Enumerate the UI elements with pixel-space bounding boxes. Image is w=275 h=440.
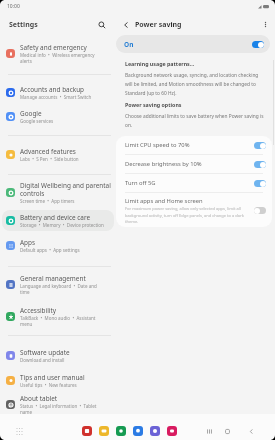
button[interactable]: Battery and device care xyxy=(2,210,114,231)
button[interactable]: Recents xyxy=(203,425,215,437)
staticText: Apps xyxy=(20,238,36,247)
button[interactable]: Software update xyxy=(2,345,114,366)
button[interactable]: Taskbar handle xyxy=(16,427,24,436)
staticText: Manage accounts • Smart Switch xyxy=(20,94,92,100)
button[interactable]: My Files xyxy=(99,426,109,436)
button[interactable]: Accessibility xyxy=(2,303,114,329)
staticText: Digital Wellbeing and parental controls xyxy=(20,181,111,198)
button[interactable]: Toggle xyxy=(254,180,266,187)
button[interactable]: Google xyxy=(2,106,114,127)
staticText: For maximum power saving, allow only sel… xyxy=(125,206,249,224)
button[interactable]: Toggle xyxy=(252,41,264,48)
button[interactable]: Decrease brightness by 10% xyxy=(116,155,272,173)
button[interactable]: Office xyxy=(82,426,92,436)
button[interactable]: On xyxy=(116,35,270,53)
button[interactable]: Toggle xyxy=(254,161,266,168)
button[interactable]: Search xyxy=(94,17,110,33)
button[interactable]: Limit CPU speed to 70% xyxy=(116,136,272,154)
button[interactable]: Toggle xyxy=(254,207,266,214)
button[interactable]: Back xyxy=(119,18,132,31)
button[interactable]: Accounts and backup xyxy=(2,82,114,103)
button[interactable]: Toggle xyxy=(254,142,266,149)
button[interactable]: Turn off 5G xyxy=(116,174,272,192)
staticText: TalkBack • Mono audio • Assistant menu xyxy=(20,315,96,327)
staticText: Useful tips • New features xyxy=(20,382,77,388)
staticText: Power saving options xyxy=(125,101,182,108)
staticText: 10:00 xyxy=(7,3,20,10)
button[interactable]: About tablet xyxy=(2,391,114,417)
button[interactable]: Limit apps and Home screen xyxy=(116,193,272,227)
button[interactable]: Tips and user manual xyxy=(2,370,114,391)
staticText: Default apps • App settings xyxy=(20,247,80,253)
staticText: About tablet xyxy=(20,394,58,403)
button[interactable]: Apps xyxy=(2,235,114,256)
button[interactable]: Safety and emergency xyxy=(2,40,114,66)
staticText: Choose additional limits to save battery… xyxy=(125,113,267,128)
staticText: Safety and emergency xyxy=(20,43,87,52)
staticText: Learning usage patterns... xyxy=(125,60,195,67)
staticText: Battery and device care xyxy=(20,213,91,222)
staticText: Medical info • Wireless emergency alerts xyxy=(20,52,95,64)
staticText: Limit CPU speed to 70% xyxy=(125,141,190,149)
staticText: Tips and user manual xyxy=(20,373,85,382)
button[interactable]: Phone xyxy=(116,426,126,436)
staticText: Accessibility xyxy=(20,306,57,315)
staticText: Background network usage, syncing, and l… xyxy=(125,72,267,96)
button[interactable]: Advanced features xyxy=(2,144,114,165)
staticText: Status • Legal information • Tablet name xyxy=(20,403,97,415)
button[interactable]: Messages xyxy=(133,426,143,436)
staticText: Power saving xyxy=(135,20,182,30)
staticText: Labs • S Pen • Side button xyxy=(20,156,79,162)
button[interactable]: Digital Wellbeing and parental controls xyxy=(2,179,114,205)
button[interactable]: Internet xyxy=(150,426,160,436)
staticText: Google services xyxy=(20,118,54,124)
button[interactable]: Back xyxy=(245,425,257,437)
staticText: Language and keyboard • Date and time xyxy=(20,283,97,295)
button[interactable]: More options xyxy=(259,18,272,31)
staticText: Turn off 5G xyxy=(125,179,156,187)
staticText: Google xyxy=(20,109,42,118)
staticText: Screen time • App timers xyxy=(20,198,75,204)
staticText: Decrease brightness by 10% xyxy=(125,160,202,168)
staticText: Settings xyxy=(9,20,38,30)
staticText: Accounts and backup xyxy=(20,85,85,94)
staticText: On xyxy=(124,40,134,49)
staticText: Limit apps and Home screen xyxy=(125,197,203,205)
button[interactable]: General management xyxy=(2,271,114,297)
staticText: Advanced features xyxy=(20,147,76,156)
staticText: Storage • Memory • Device protection xyxy=(20,222,104,228)
staticText: Software update xyxy=(20,348,70,357)
staticText: Download and install xyxy=(20,357,65,363)
button[interactable]: Home xyxy=(221,425,233,437)
button[interactable]: Camera xyxy=(167,426,177,436)
staticText: General management xyxy=(20,274,86,283)
